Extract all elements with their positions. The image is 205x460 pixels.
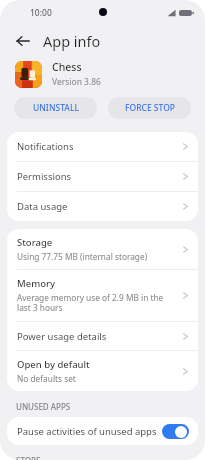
other: Pause activities of unused apps toggle bbox=[162, 424, 189, 439]
staticText: Pause activities of unused apps bbox=[17, 425, 158, 438]
staticText: FORCE STOP bbox=[125, 102, 175, 114]
staticText: Data usage bbox=[17, 200, 182, 213]
button[interactable]: Back bbox=[11, 29, 35, 53]
button[interactable]: Pause activities of unused apps bbox=[7, 417, 198, 445]
staticText: Average memory use of 2.9 MB in the last… bbox=[17, 292, 178, 314]
staticText: Chess bbox=[52, 60, 82, 74]
button[interactable]: FORCE STOP bbox=[108, 97, 191, 119]
staticText: Open by default bbox=[17, 358, 90, 371]
staticText: 10:00 bbox=[30, 7, 52, 19]
staticText: Permissions bbox=[17, 170, 182, 183]
staticText: App info bbox=[43, 31, 101, 51]
button[interactable]: Storage bbox=[7, 229, 198, 270]
staticText: Version 3.86 bbox=[52, 76, 101, 88]
button[interactable]: Notifications bbox=[7, 132, 198, 162]
button[interactable]: Data usage bbox=[7, 192, 198, 221]
staticText: Memory bbox=[17, 277, 56, 290]
staticText: Using 77.75 MB (internal storage) bbox=[17, 251, 148, 262]
staticText: Notifications bbox=[17, 140, 182, 153]
staticText: UNINSTALL bbox=[33, 102, 79, 114]
button[interactable]: Power usage details bbox=[7, 322, 198, 351]
staticText: UNUSED APPS bbox=[16, 401, 71, 412]
staticText: Storage bbox=[17, 236, 53, 249]
button[interactable]: UNINSTALL bbox=[14, 97, 97, 119]
button[interactable]: Permissions bbox=[7, 162, 198, 192]
staticText: Power usage details bbox=[17, 330, 182, 343]
staticText: No defaults set bbox=[17, 373, 76, 384]
staticText: STORE bbox=[16, 455, 41, 460]
button[interactable]: Open by default bbox=[7, 351, 198, 391]
button[interactable]: Memory bbox=[7, 270, 198, 322]
